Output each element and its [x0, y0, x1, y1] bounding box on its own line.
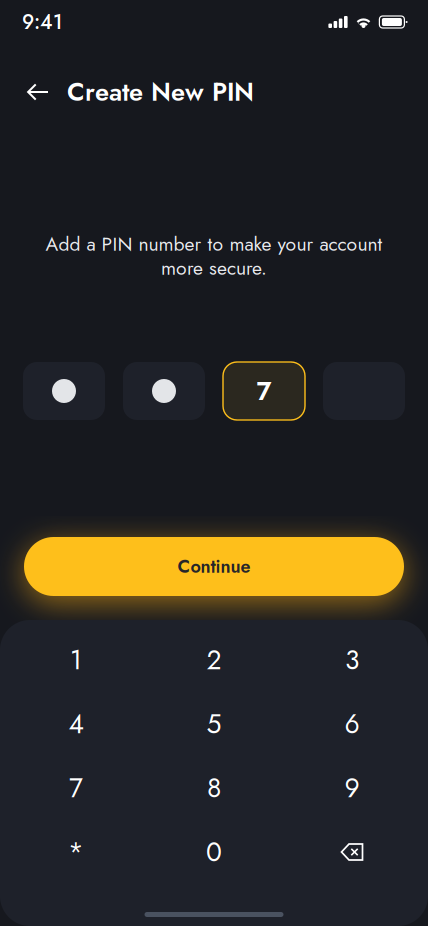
- button[interactable]: 8: [145, 756, 283, 820]
- staticText: *: [68, 833, 84, 871]
- staticText: 2: [206, 641, 221, 679]
- staticText: 1: [70, 641, 82, 679]
- button[interactable]: *: [7, 820, 145, 884]
- staticText: 9:41: [22, 7, 62, 36]
- staticText: 9: [344, 769, 359, 807]
- button[interactable]: Back: [24, 74, 52, 110]
- button[interactable]: 2: [145, 628, 283, 692]
- staticText: 6: [344, 705, 359, 743]
- staticText: Create New PIN: [67, 74, 254, 110]
- button[interactable]: 7: [7, 756, 145, 820]
- staticText: more secure.: [161, 254, 267, 282]
- button[interactable]: Delete: [283, 820, 421, 884]
- button[interactable]: 1: [7, 628, 145, 692]
- staticText: 4: [68, 705, 83, 743]
- staticText: 7: [256, 372, 271, 410]
- staticText: 0: [206, 833, 222, 871]
- staticText: 3: [345, 641, 359, 679]
- button[interactable]: Continue: [24, 537, 404, 596]
- button[interactable]: 5: [145, 692, 283, 756]
- button[interactable]: 4: [7, 692, 145, 756]
- staticText: 5: [206, 705, 221, 743]
- staticText: 7: [69, 769, 83, 807]
- button[interactable]: 3: [283, 628, 421, 692]
- button[interactable]: 0: [145, 820, 283, 884]
- staticText: Continue: [177, 553, 250, 579]
- button[interactable]: 9: [283, 756, 421, 820]
- button[interactable]: 6: [283, 692, 421, 756]
- staticText: Add a PIN number to make your account: [45, 230, 382, 258]
- staticText: 8: [207, 769, 221, 807]
